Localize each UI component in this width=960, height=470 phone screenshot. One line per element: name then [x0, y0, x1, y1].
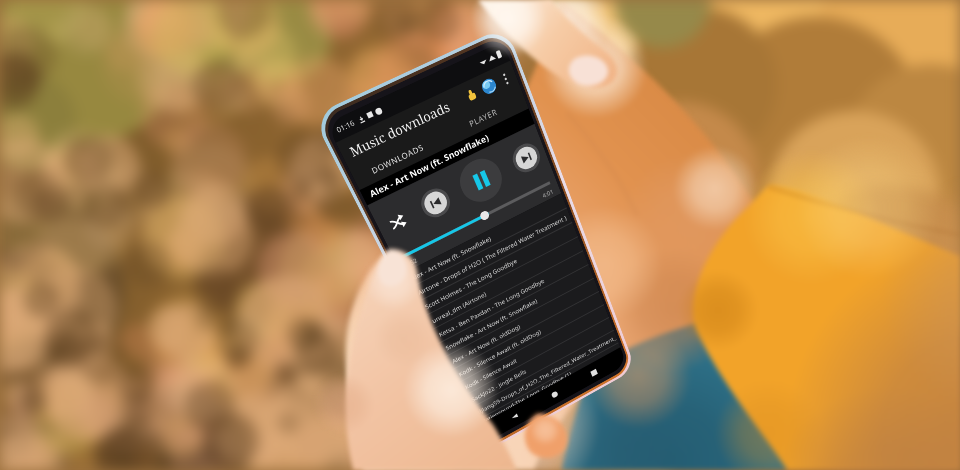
button[interactable]: unreal_dm (Airtone): [423, 237, 583, 330]
button[interactable]: Kodk - Silence Await: [457, 305, 609, 396]
button[interactable]: Airtone - Drops of H2O ( The Filtered Wa…: [409, 208, 572, 302]
staticText: 01:16: [335, 117, 356, 135]
button[interactable]: Browser: [479, 76, 498, 96]
staticText: djlang59-Drops_of_H2O_The_Filtered_Water…: [476, 334, 617, 416]
button[interactable]: Ketsa - Ben Paxdan - The Long Goodbye: [430, 251, 588, 344]
button[interactable]: Next: [512, 143, 540, 173]
button[interactable]: Pause: [453, 151, 508, 209]
staticText: Snowflake - Art Now (ft. Snowflake): [444, 297, 539, 352]
staticText: Alex - Art Now (ft. Snowflake): [409, 234, 492, 283]
button[interactable]: Scott Holmes - The Long Goodbye: [416, 223, 578, 316]
button[interactable]: Alex - Art Now (ft. oldDog): [444, 278, 599, 370]
staticText: DOWNLOADS: [370, 141, 426, 176]
staticText: 1:52: [404, 257, 418, 269]
staticText: Ketsa - Ben Paxdan - The Long Goodbye: [437, 276, 546, 339]
staticText: Music downloads: [346, 97, 452, 160]
button[interactable]: Alex - Art Now (ft. Snowflake): [402, 193, 567, 288]
staticText: 4:01: [541, 188, 555, 200]
button[interactable]: Recents: [582, 360, 605, 385]
staticText: Alex - Art Now (ft. Snowflake): [367, 131, 491, 200]
staticText: Scott Holmes - The Long Goodbye: [423, 256, 519, 311]
staticText: Airtone - Drops of H2O ( The Filtered Wa…: [416, 213, 568, 297]
staticText: Alex - Art Now (ft. oldDog): [451, 322, 521, 365]
button[interactable]: Previous: [421, 188, 450, 218]
staticText: unreal_dm (Airtone): [430, 290, 488, 325]
staticText: Kodk - Silence Await (ft. oldDog): [457, 328, 542, 378]
staticText: PLAYER: [467, 106, 499, 129]
staticText: Patiensound-The_Long_Goodbye (1): [481, 370, 572, 423]
button[interactable]: Back: [501, 404, 527, 429]
staticText: Kodk - Silence Await: [464, 357, 518, 391]
button[interactable]: Home: [542, 382, 566, 407]
button[interactable]: Kodk - Silence Await (ft. oldDog): [451, 292, 604, 383]
other: Pointer: [464, 87, 479, 103]
button[interactable]: djlang59-Drops_of_H2O_The_Filtered_Water…: [470, 330, 618, 421]
button[interactable]: Snowflake - Art Now (ft. Snowflake): [437, 265, 594, 357]
button[interactable]: SackJo22 - Jingle Bells: [463, 318, 614, 408]
button[interactable]: Patiensound-The_Long_Goodbye (1): [476, 343, 620, 426]
button[interactable]: Shuffle: [380, 205, 414, 239]
staticText: SackJo22 - Jingle Bells: [470, 367, 528, 403]
button[interactable]: DOWNLOADS: [349, 127, 446, 190]
button[interactable]: PLAYER: [436, 87, 529, 149]
button[interactable]: More options: [497, 67, 513, 90]
